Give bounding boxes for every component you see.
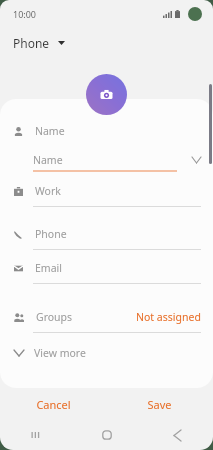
button[interactable]: Change contact photo — [86, 74, 127, 115]
staticText: Name — [35, 124, 65, 138]
staticText: Cancel — [36, 397, 71, 412]
button[interactable]: Recents — [0, 420, 71, 450]
button[interactable]: Groups — [0, 306, 213, 333]
staticText: Phone — [35, 227, 67, 241]
staticText: View more — [34, 346, 86, 360]
button[interactable]: Phone — [0, 27, 213, 59]
button[interactable]: Name — [33, 148, 201, 172]
button[interactable]: View more — [0, 343, 213, 363]
button[interactable]: Home — [71, 420, 142, 450]
button[interactable]: Phone — [0, 223, 213, 250]
staticText: 10:00 — [13, 8, 37, 20]
staticText: Email — [35, 261, 62, 275]
button[interactable]: Save — [106, 388, 213, 420]
button[interactable]: Cancel — [0, 388, 106, 420]
staticText: Work — [35, 184, 61, 198]
staticText: Not assigned — [136, 310, 201, 324]
button[interactable]: Email — [0, 257, 213, 284]
staticText: Groups — [36, 310, 73, 324]
staticText: Save — [147, 397, 172, 412]
staticText: Name — [33, 153, 63, 167]
button[interactable]: Back — [142, 420, 213, 450]
staticText: Phone — [13, 35, 50, 51]
button[interactable]: Work — [0, 180, 213, 207]
